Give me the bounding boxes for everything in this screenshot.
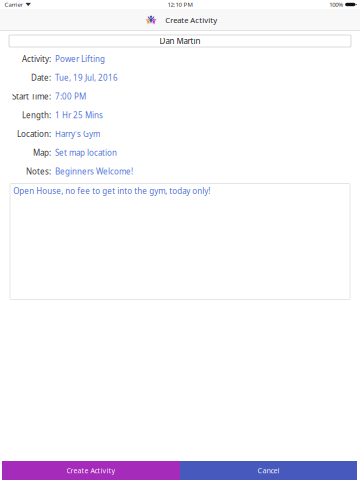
button[interactable]: Create Activity (2, 461, 180, 480)
staticText: Length: (22, 110, 51, 120)
staticText: 1 Hr 25 Mins (55, 110, 103, 120)
staticText: Tue, 19 Jul, 2016 (55, 72, 118, 83)
staticText: Notes: (26, 166, 51, 177)
staticText: Power Lifting (55, 54, 105, 64)
staticText: Create Activity (66, 466, 115, 475)
staticText: Map: (33, 147, 51, 158)
staticText: Create Activity (165, 15, 217, 25)
staticText: Beginners Welcome! (55, 166, 133, 177)
staticText: Cancel (257, 466, 279, 475)
staticText: Start Time: (12, 91, 51, 102)
staticText: Date: (31, 72, 51, 83)
staticText: 7:00 PM (55, 91, 86, 102)
button[interactable]: Cancel (180, 461, 357, 480)
staticText: Set map location (55, 147, 117, 158)
staticText: Open House, no fee to get into the gym, … (13, 186, 210, 196)
staticText: 100% (329, 0, 343, 9)
staticText: Dan Martin (159, 36, 200, 46)
staticText: 12:10 PM (167, 0, 192, 9)
staticText: Activity: (22, 54, 51, 64)
staticText: Carrier (4, 0, 22, 9)
staticText: Location: (17, 129, 51, 139)
staticText: Harry's Gym (55, 129, 100, 139)
